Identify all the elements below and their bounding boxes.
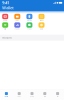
button[interactable]: Pay [14, 14, 20, 21]
staticText: Funds [15, 28, 20, 30]
staticText: Gold [40, 28, 43, 30]
staticText: Recent [2, 36, 12, 39]
staticText: Me [57, 96, 59, 97]
button[interactable]: Gold [38, 22, 44, 30]
staticText: Home [4, 96, 8, 97]
button[interactable]: Scan [26, 92, 38, 97]
button[interactable]: Bills [2, 22, 8, 30]
button[interactable]: Home [0, 92, 13, 97]
button[interactable]: Scan [2, 14, 8, 21]
button[interactable]: Life [38, 92, 51, 97]
button[interactable]: Funds [14, 22, 20, 30]
staticText: Cards [27, 20, 32, 21]
button[interactable]: More [38, 14, 44, 21]
button[interactable]: Cards [26, 14, 32, 21]
staticText: More [39, 20, 43, 21]
staticText: Scan [30, 96, 34, 97]
staticText: Life [44, 96, 46, 97]
staticText: Pay [18, 96, 21, 97]
button[interactable]: Pay [13, 92, 26, 97]
staticText: Wallet [2, 5, 14, 10]
staticText: Scan [3, 20, 7, 21]
staticText: Bills [4, 28, 6, 30]
staticText: 9:41 [2, 0, 9, 5]
button[interactable]: Me [51, 92, 64, 97]
button[interactable]: Food [26, 22, 32, 30]
staticText: Pay [16, 20, 19, 21]
staticText: Food [27, 28, 31, 30]
